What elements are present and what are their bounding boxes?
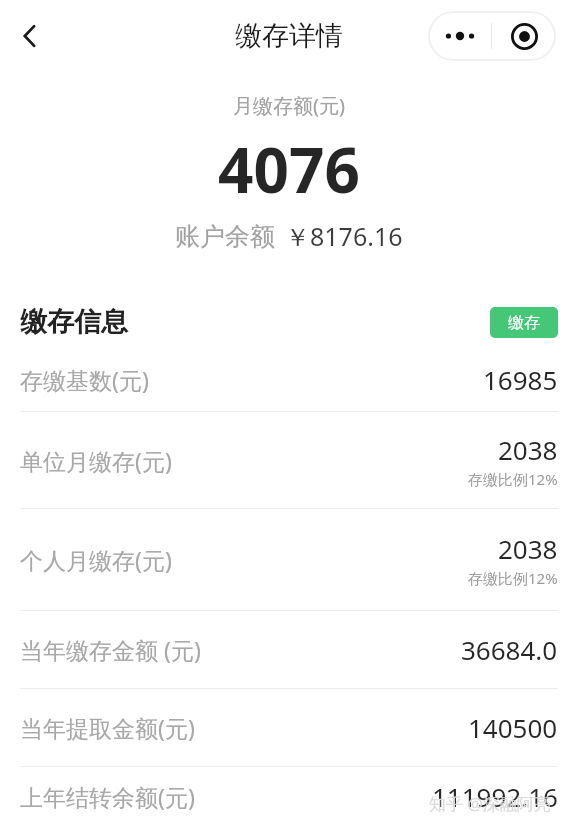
staticText: 存缴比例12% <box>468 469 558 489</box>
button[interactable]: Close <box>492 11 556 61</box>
staticText: 当年提取金额(元) <box>20 712 195 743</box>
staticText: 111992.16 <box>432 779 558 814</box>
staticText: 140500 <box>468 710 558 745</box>
button[interactable]: 存缴基数(元) <box>0 347 578 411</box>
staticText: 缴存详情 <box>235 19 343 53</box>
button[interactable]: 当年提取金额(元) <box>0 689 578 766</box>
staticText: 单位月缴存(元) <box>20 445 172 476</box>
button[interactable]: 单位月缴存(元) <box>0 412 578 508</box>
staticText: 16985 <box>483 362 558 397</box>
staticText: 2038 <box>498 531 558 566</box>
staticText: 知乎 @深融阿亮 <box>429 792 551 815</box>
staticText: 缴存信息 <box>20 305 128 339</box>
staticText: 当年缴存金额 (元) <box>20 634 201 665</box>
button[interactable]: 缴存 <box>490 307 558 338</box>
staticText: 存缴比例12% <box>468 568 558 588</box>
staticText: 账户余额 <box>175 221 275 252</box>
staticText: 月缴存额(元) <box>233 92 345 119</box>
staticText: 缴存 <box>508 313 540 333</box>
button[interactable]: 当年缴存金额 (元) <box>0 611 578 688</box>
staticText: 2038 <box>498 432 558 467</box>
button[interactable]: 个人月缴存(元) <box>0 509 578 610</box>
button[interactable]: More <box>428 11 491 61</box>
staticText: 上年结转余额(元) <box>20 781 195 812</box>
button[interactable]: Back <box>6 12 54 60</box>
staticText: 36684.0 <box>461 632 558 667</box>
staticText: 存缴基数(元) <box>20 364 149 395</box>
button[interactable]: 上年结转余额(元) <box>0 767 578 826</box>
staticText: ￥8176.16 <box>285 219 403 253</box>
staticText: 个人月缴存(元) <box>20 544 172 575</box>
staticText: 4076 <box>218 127 360 211</box>
